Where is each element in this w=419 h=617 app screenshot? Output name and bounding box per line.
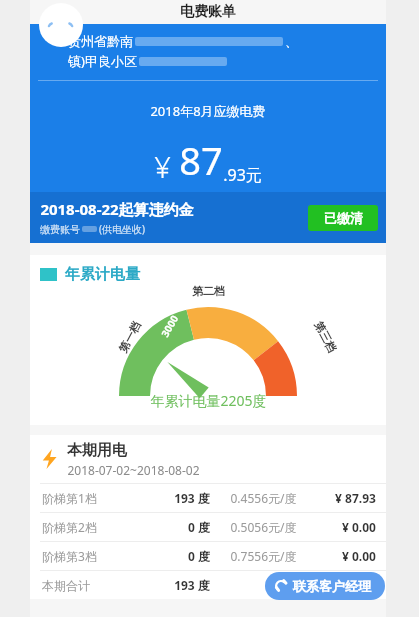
- staticText: 贵州省黔南: [68, 33, 133, 49]
- staticText: 0.4556元/度: [230, 490, 297, 506]
- staticText: 电费账单: [180, 3, 236, 21]
- staticText: 第三档: [312, 319, 339, 355]
- staticText: 87: [179, 134, 223, 186]
- staticText: 阶梯第1档: [42, 490, 97, 506]
- staticText: 4700: [278, 320, 301, 346]
- staticText: 3000: [158, 312, 181, 339]
- button[interactable]: 阶梯第2档: [30, 513, 386, 541]
- staticText: 0 度: [188, 519, 210, 535]
- staticText: ¥ 0.00: [342, 548, 376, 564]
- staticText: ¥: [154, 147, 171, 186]
- staticText: 年累计电量2205度: [150, 391, 267, 410]
- staticText: (供电坐收): [99, 222, 145, 236]
- staticText: ¥ 87.93: [335, 490, 376, 506]
- staticText: 第二档: [192, 284, 225, 298]
- staticText: 阶梯第3档: [42, 548, 97, 564]
- staticText: 本期合计: [42, 578, 90, 593]
- staticText: 193 度: [174, 490, 210, 506]
- button[interactable]: 本期合计: [30, 571, 386, 599]
- staticText: 联系客户经理: [293, 578, 371, 594]
- staticText: 2018-07-02~2018-08-02: [67, 462, 200, 478]
- button[interactable]: 阶梯第3档: [30, 542, 386, 570]
- staticText: 本期用电: [67, 441, 127, 460]
- staticText: 第一档: [116, 319, 143, 355]
- staticText: 阶梯第2档: [42, 519, 97, 535]
- staticText: 0.5056元/度: [230, 519, 297, 535]
- button[interactable]: Call customer manager: [265, 572, 385, 600]
- staticText: 0.7556元/度: [230, 548, 297, 564]
- staticText: .93元: [223, 164, 262, 186]
- staticText: ¥ 0.00: [342, 519, 376, 535]
- staticText: 年累计电量: [65, 265, 140, 284]
- staticText: 缴费账号: [40, 223, 80, 236]
- staticText: 193 度: [174, 577, 210, 593]
- other: Call customer manager: [274, 579, 288, 593]
- staticText: 2018年8月应缴电费: [150, 102, 266, 120]
- staticText: 镇)甲良小区: [68, 52, 137, 70]
- staticText: 、: [285, 33, 298, 49]
- button[interactable]: 阶梯第1档: [30, 484, 386, 512]
- staticText: 0 度: [188, 548, 210, 564]
- staticText: ¥ 87.93: [335, 577, 376, 593]
- staticText: 2018-08-22起算违约金: [40, 199, 194, 219]
- button[interactable]: 已缴清: [308, 205, 378, 231]
- staticText: 已缴清: [324, 210, 363, 226]
